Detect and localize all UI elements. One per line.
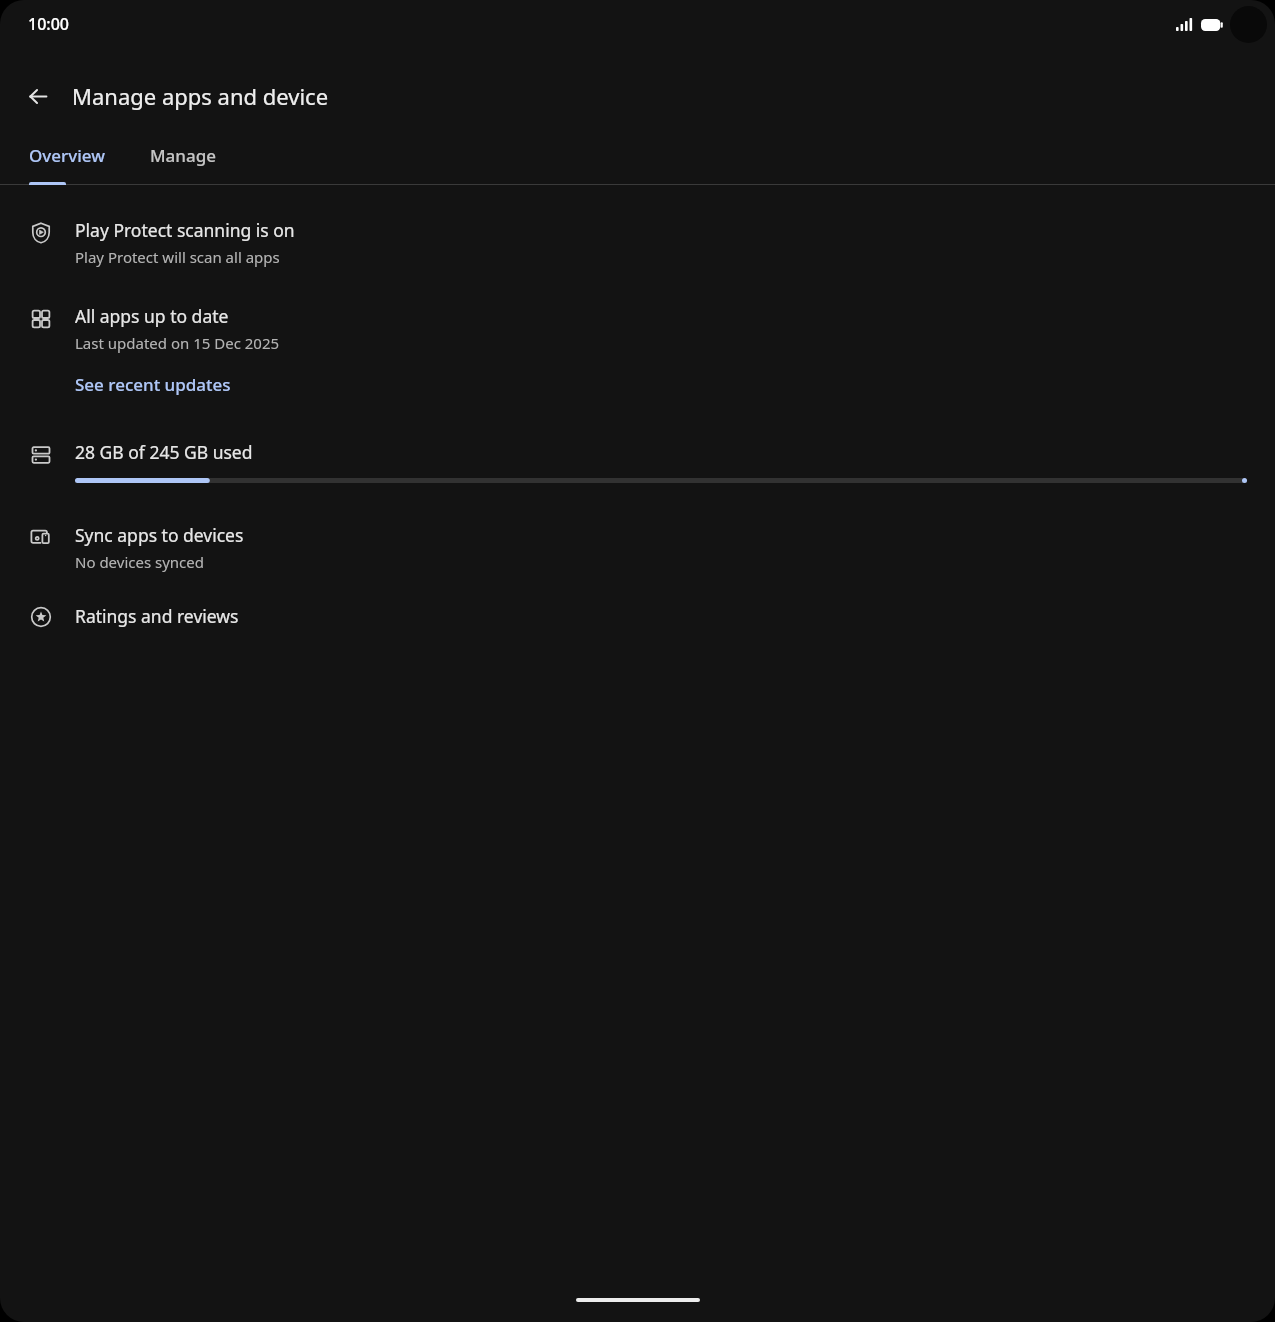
button[interactable]: Manage	[134, 138, 246, 183]
staticText: Play Protect scanning is on	[75, 218, 295, 242]
button[interactable]: See recent updates	[75, 369, 231, 400]
staticText: See recent updates	[75, 373, 231, 396]
staticText: Manage	[150, 144, 217, 167]
staticText: Manage apps and device	[72, 81, 329, 111]
button[interactable]: Overview	[0, 138, 134, 183]
button[interactable]: Sync apps to devices	[0, 523, 1275, 572]
button[interactable]: Updates	[0, 304, 1275, 400]
other: Sync apps to devices	[29, 526, 53, 550]
button[interactable]: Back	[16, 74, 60, 118]
staticText: No devices synced	[75, 552, 204, 572]
staticText: Last updated on 15 Dec 2025	[75, 333, 280, 353]
other: Storage	[29, 443, 53, 467]
staticText: 10:00	[28, 13, 69, 35]
other: Ratings and reviews	[29, 605, 53, 629]
staticText: Ratings and reviews	[75, 604, 239, 628]
staticText: All apps up to date	[75, 304, 229, 328]
staticText: Overview	[29, 144, 105, 167]
other: Play Protect	[29, 221, 53, 245]
other: Updates	[29, 307, 53, 331]
staticText: Play Protect will scan all apps	[75, 247, 280, 267]
button[interactable]: Storage	[0, 440, 1275, 483]
staticText: Sync apps to devices	[75, 523, 244, 547]
button[interactable]: Ratings and reviews	[0, 604, 1275, 629]
staticText: 28 GB of 245 GB used	[75, 440, 253, 464]
button[interactable]: Play Protect	[0, 218, 1275, 267]
